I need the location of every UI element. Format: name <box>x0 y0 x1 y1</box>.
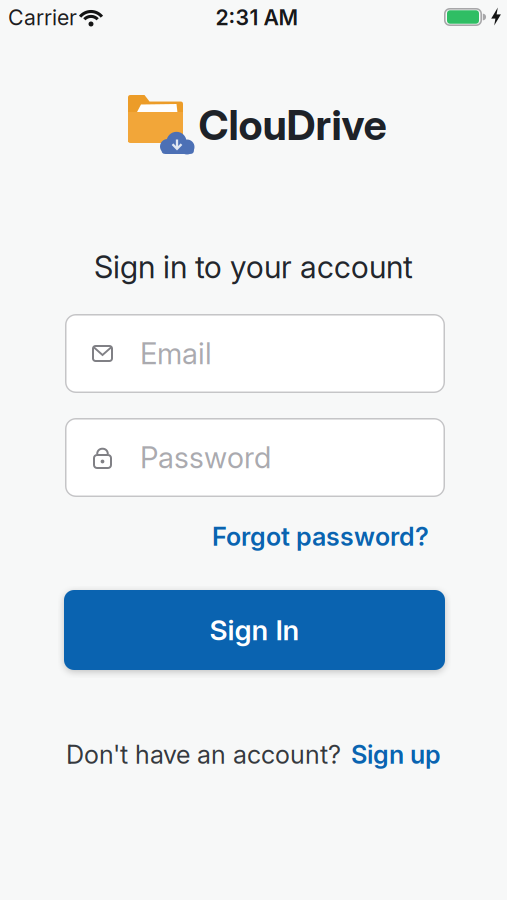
staticText: Carrier <box>8 5 77 30</box>
button[interactable]: Sign up <box>351 740 441 769</box>
staticText: ClouDrive <box>198 101 386 149</box>
button[interactable]: Email <box>65 314 445 393</box>
staticText: Don't have an account? <box>66 740 341 769</box>
button[interactable]: Forgot password? <box>212 522 429 551</box>
staticText: Sign in to your account <box>94 249 413 285</box>
staticText: Sign up <box>351 740 441 769</box>
staticText: 2:31 AM <box>215 5 298 30</box>
button[interactable]: Password <box>65 418 445 497</box>
staticText: Sign In <box>209 613 299 646</box>
staticText: Email <box>140 336 212 371</box>
button[interactable]: Sign In <box>64 590 445 670</box>
staticText: Forgot password? <box>212 522 429 551</box>
staticText: Password <box>140 440 271 475</box>
